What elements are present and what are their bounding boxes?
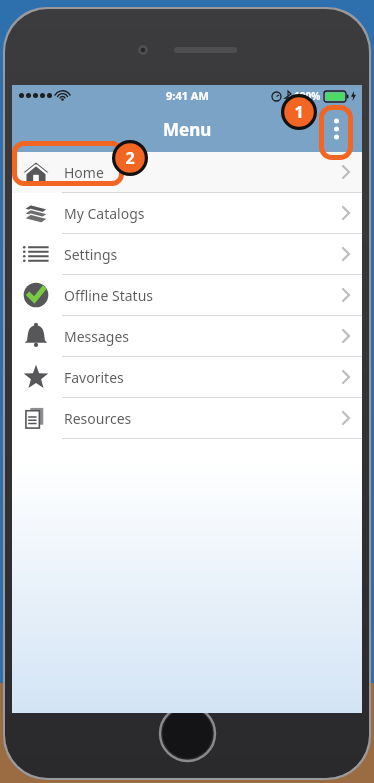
button[interactable]: Resources — [12, 398, 362, 439]
button[interactable]: My Catalogs — [12, 193, 362, 234]
staticText: Home — [64, 163, 342, 182]
staticText: Offline Status — [64, 286, 342, 305]
button[interactable]: Settings — [12, 234, 362, 275]
staticText: My Catalogs — [64, 204, 342, 223]
staticText: Resources — [64, 409, 342, 428]
button[interactable]: Offline Status — [12, 275, 362, 316]
button[interactable]: Favorites — [12, 357, 362, 398]
button[interactable]: Messages — [12, 316, 362, 357]
button[interactable]: Home — [12, 152, 362, 193]
staticText: Messages — [64, 327, 342, 346]
staticText: 9:41 AM — [166, 88, 209, 103]
staticText: 2 — [125, 147, 135, 169]
button[interactable]: More options — [322, 115, 350, 143]
staticText: 1 — [294, 101, 304, 123]
staticText: Menu — [163, 118, 212, 141]
staticText: Favorites — [64, 368, 342, 387]
staticText: Settings — [64, 245, 342, 264]
staticText: 100% — [294, 89, 321, 103]
